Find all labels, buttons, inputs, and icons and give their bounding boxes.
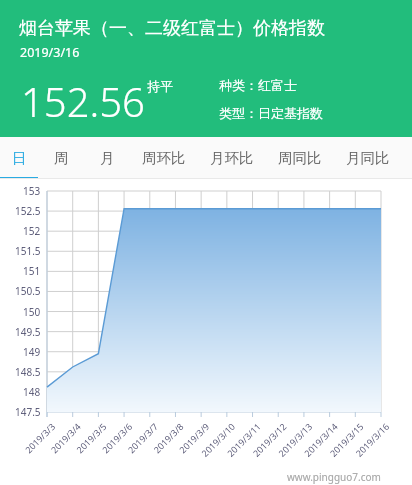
staticText: 周 [54,149,69,167]
button[interactable]: 日 [0,137,38,179]
staticText: 种类：红富士 [219,77,297,93]
staticText: 月同比 [346,149,390,167]
staticText: 日 [12,149,27,167]
staticText: 周同比 [278,149,322,167]
button[interactable]: 月环比 [198,137,266,179]
button[interactable]: 周同比 [266,137,334,179]
button[interactable]: 月同比 [334,137,402,179]
staticText: 持平 [147,78,173,94]
button[interactable]: 周环比 [130,137,198,179]
staticText: 周环比 [142,149,186,167]
staticText: 月环比 [210,149,254,167]
staticText: 2019/3/16 [20,44,80,61]
staticText: 152.56 [21,74,145,128]
staticText: 烟台苹果（一、二级红富士）价格指数 [19,17,325,40]
staticText: 月 [100,149,115,167]
button[interactable]: 月 [84,137,130,179]
button[interactable]: 周 [38,137,84,179]
staticText: 类型：日定基指数 [219,105,323,121]
